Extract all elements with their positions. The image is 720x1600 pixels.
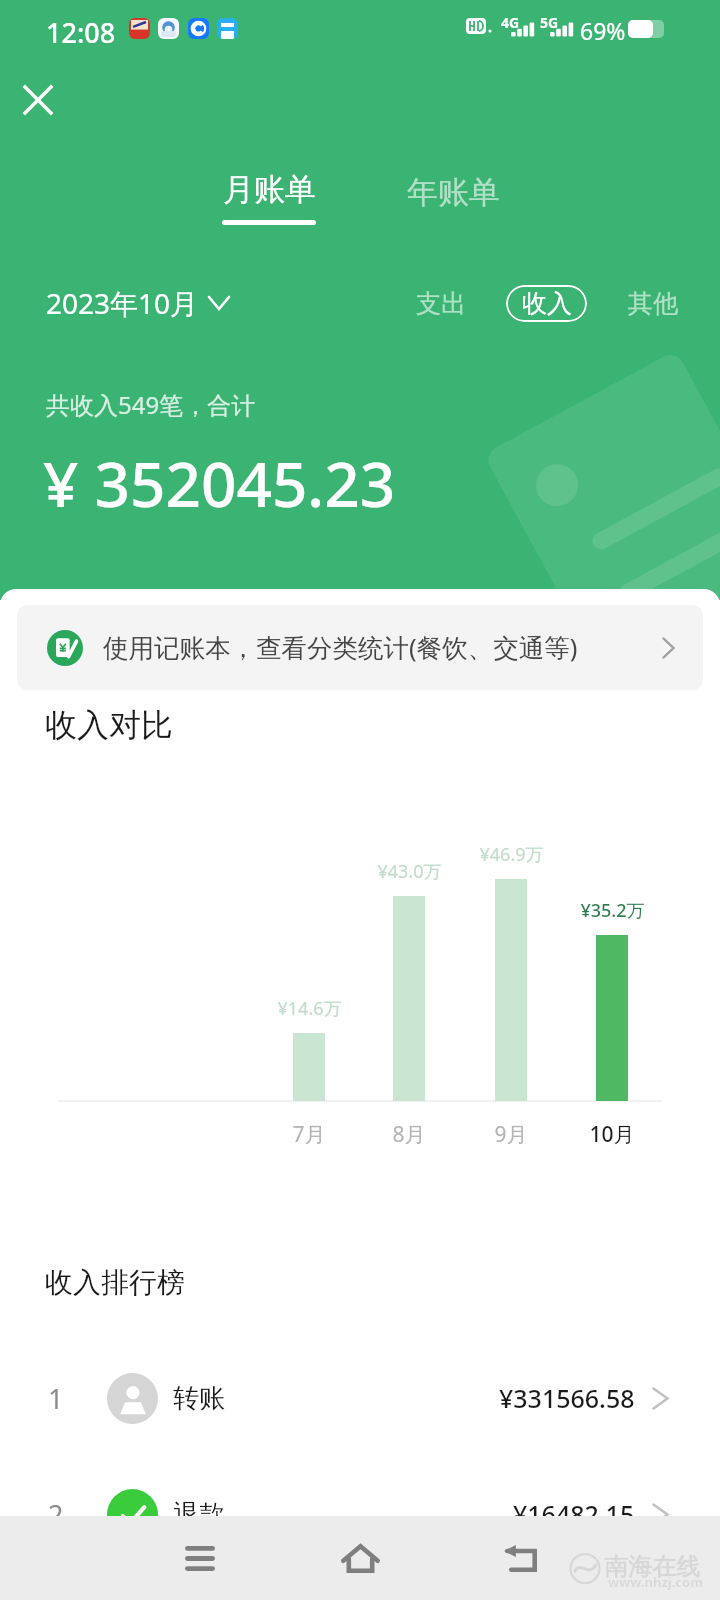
staticText: ¥331566.58 xyxy=(499,1381,635,1415)
staticText: 其他 xyxy=(628,288,678,319)
staticText: 退款 xyxy=(173,1498,225,1531)
button[interactable]: 月账单 xyxy=(222,170,316,225)
button[interactable]: 2 xyxy=(0,1456,720,1572)
staticText: 2 xyxy=(48,1496,64,1533)
staticText: ¥35.2万 xyxy=(580,898,645,923)
staticText: 共收入549笔，合计 xyxy=(46,388,256,421)
staticText: 收入排行榜 xyxy=(45,1265,185,1300)
staticText: 支出 xyxy=(416,288,466,319)
staticText: 转账 xyxy=(173,1382,225,1415)
staticText: ¥ 352045.23 xyxy=(43,441,396,525)
staticText: 月账单 xyxy=(223,170,316,209)
staticText: ¥43.0万 xyxy=(377,859,442,884)
staticText: 9月 xyxy=(494,1120,528,1149)
staticText: 12:08 xyxy=(46,14,116,51)
button[interactable]: 1 xyxy=(0,1340,720,1456)
button[interactable]: 年账单 xyxy=(407,173,500,212)
button[interactable]: Recent apps xyxy=(152,1516,248,1600)
button[interactable]: 2023年10月 xyxy=(46,284,229,322)
staticText: ¥16482.15 xyxy=(513,1497,635,1531)
staticText: ¥46.9万 xyxy=(479,842,544,867)
button[interactable]: 使用记账本，查看分类统计(餐饮、交通等) xyxy=(17,605,703,690)
staticText: ¥14.6万 xyxy=(277,996,342,1021)
staticText: 收入 xyxy=(522,288,572,319)
staticText: 年账单 xyxy=(407,173,500,212)
staticText: www.nhzj.com xyxy=(608,1573,703,1591)
button[interactable]: 收入 xyxy=(506,285,587,322)
button[interactable]: 其他 xyxy=(616,280,690,327)
staticText: 8月 xyxy=(392,1120,426,1149)
staticText: 南海在线 xyxy=(604,1552,700,1582)
staticText: 4G xyxy=(501,13,520,32)
staticText: 收入对比 xyxy=(45,705,173,745)
staticText: 1 xyxy=(48,1380,64,1417)
staticText: 5G xyxy=(540,13,559,32)
button[interactable]: Close xyxy=(10,72,66,128)
staticText: 7月 xyxy=(292,1120,326,1149)
button[interactable]: 支出 xyxy=(404,280,478,327)
staticText: 69% xyxy=(580,15,626,46)
staticText: 使用记账本，查看分类统计(餐饮、交通等) xyxy=(103,630,578,665)
staticText: 2023年10月 xyxy=(46,284,199,322)
button[interactable]: Home xyxy=(312,1516,408,1600)
staticText: 10月 xyxy=(589,1120,635,1149)
button[interactable]: Back xyxy=(472,1516,568,1600)
